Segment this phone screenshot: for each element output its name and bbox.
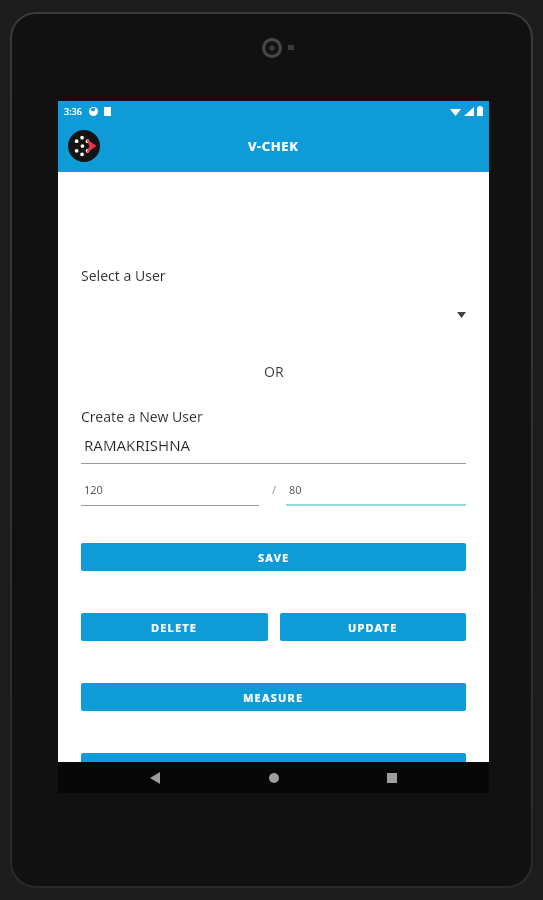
button[interactable]: Select a user dropdown [81,294,466,328]
button[interactable]: Home [252,762,296,793]
button[interactable]: 120 [81,482,259,506]
button[interactable]: 80 [286,482,466,506]
staticText: 80 [289,482,302,497]
staticText: HISTORY [245,760,302,775]
staticText: Create a New User [81,407,203,426]
button[interactable]: UPDATE [280,613,466,641]
button[interactable]: App logo [68,130,100,162]
staticText: MEASURE [243,690,304,705]
staticText: Select a User [81,266,166,285]
button[interactable]: DELETE [81,613,268,641]
staticText: UPDATE [348,620,398,635]
staticText: 120 [84,482,103,497]
staticText: OR [264,362,284,381]
button[interactable]: RAMAKRISHNA [81,434,466,464]
staticText: DELETE [151,620,198,635]
button[interactable]: Recent apps [370,762,414,793]
button[interactable]: HISTORY [81,753,466,781]
staticText: RAMAKRISHNA [84,435,191,455]
button[interactable]: Back [133,762,177,793]
button[interactable]: MEASURE [81,683,466,711]
button[interactable]: SAVE [81,543,466,571]
staticText: / [272,482,277,497]
staticText: SAVE [258,550,290,565]
staticText: 3:36 [64,105,82,117]
staticText: V-CHEK [248,137,299,155]
